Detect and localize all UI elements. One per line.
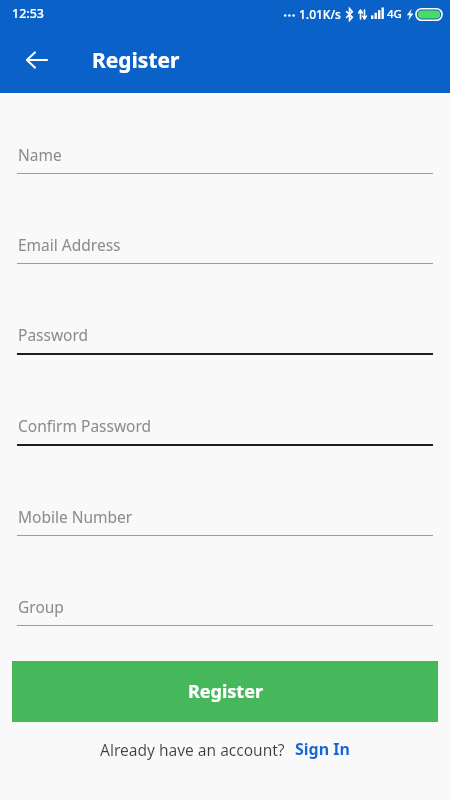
staticText: Email Address	[18, 234, 121, 255]
button[interactable]: Group	[17, 596, 433, 626]
staticText: Register	[188, 679, 263, 704]
staticText: 12:53	[12, 5, 45, 22]
button[interactable]: Password	[17, 324, 433, 355]
staticText: 1.01K/s	[299, 6, 341, 22]
button[interactable]: Sign In	[295, 738, 350, 760]
button[interactable]: Mobile Number	[17, 506, 433, 536]
staticText: 4G	[387, 6, 402, 22]
staticText: Confirm Password	[18, 415, 152, 436]
staticText: Register	[92, 46, 180, 75]
button[interactable]: Back	[13, 36, 61, 84]
staticText: Mobile Number	[18, 506, 133, 527]
staticText: Sign In	[295, 738, 350, 760]
button[interactable]: Confirm Password	[17, 415, 433, 446]
staticText: Password	[18, 324, 89, 345]
staticText: Name	[18, 144, 62, 165]
staticText: Already have an account?	[100, 739, 285, 760]
button[interactable]: Register	[12, 661, 438, 722]
button[interactable]: Email Address	[17, 234, 433, 264]
button[interactable]: Name	[17, 144, 433, 174]
staticText: Group	[18, 596, 64, 617]
